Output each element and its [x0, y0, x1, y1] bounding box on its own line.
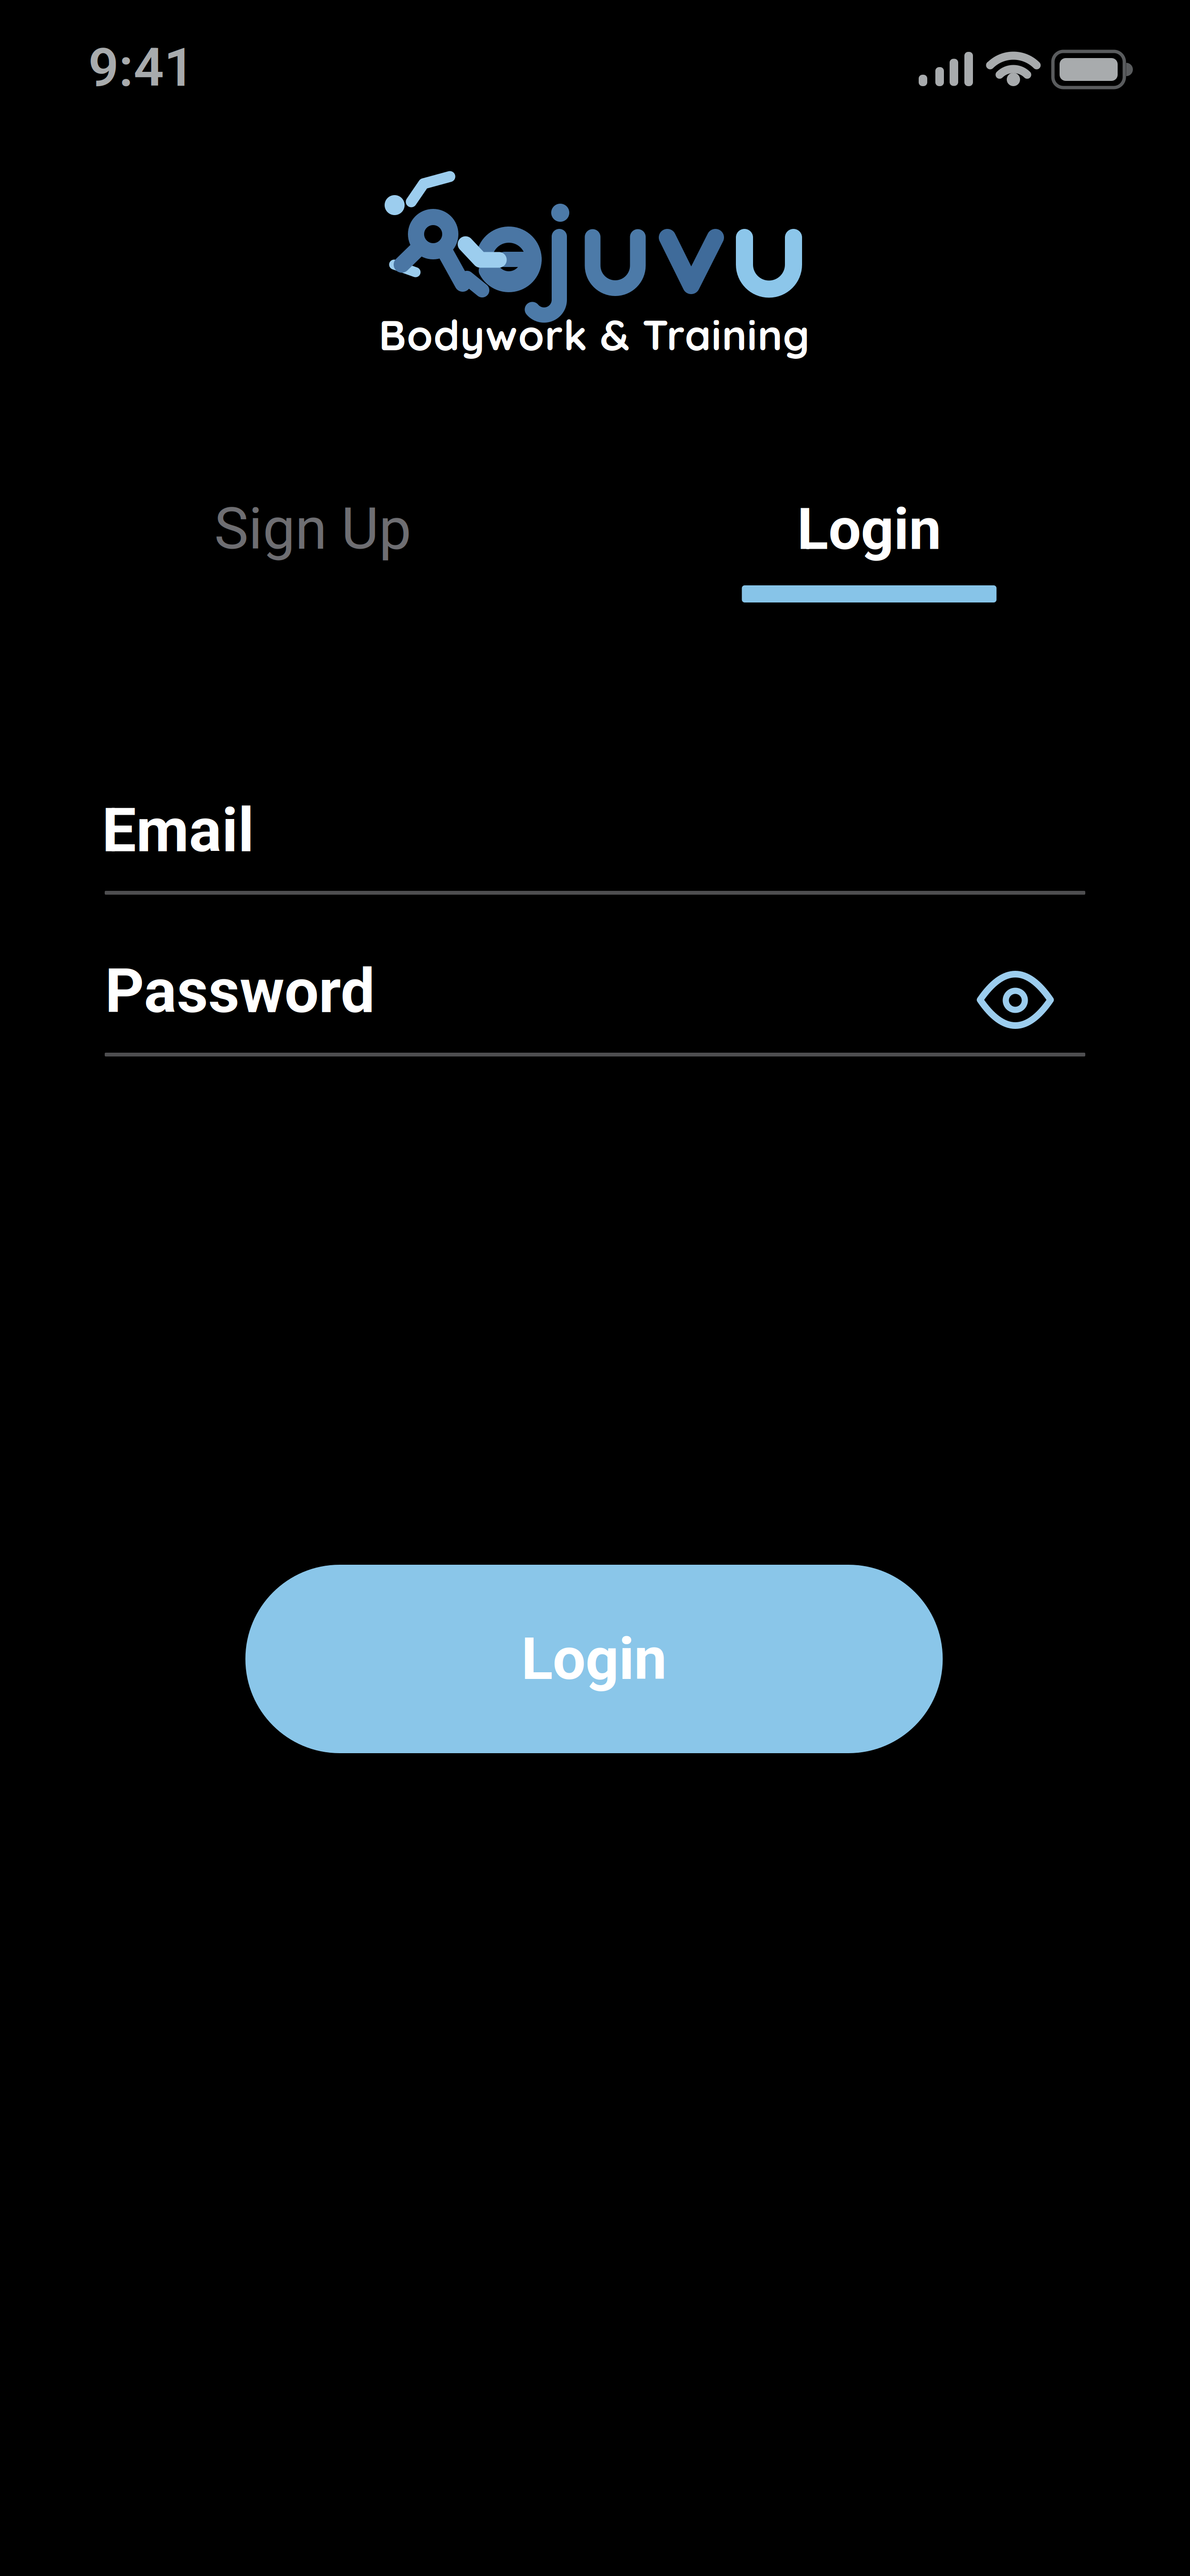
button[interactable]: Sign Up [146, 476, 479, 581]
staticText: Bodywork & Training [379, 308, 809, 361]
staticText: Email [102, 795, 254, 866]
staticText: Login [797, 495, 941, 563]
button[interactable]: Password [105, 942, 1085, 1066]
button[interactable]: Login [245, 1565, 943, 1753]
staticText: 9:41 [88, 36, 194, 99]
staticText: Login [521, 1625, 667, 1693]
button[interactable] [963, 957, 1068, 1043]
staticText: Password [105, 956, 375, 1027]
button[interactable]: Login [703, 486, 1036, 603]
staticText: Sign Up [214, 495, 411, 563]
button[interactable]: Email [105, 780, 1085, 904]
